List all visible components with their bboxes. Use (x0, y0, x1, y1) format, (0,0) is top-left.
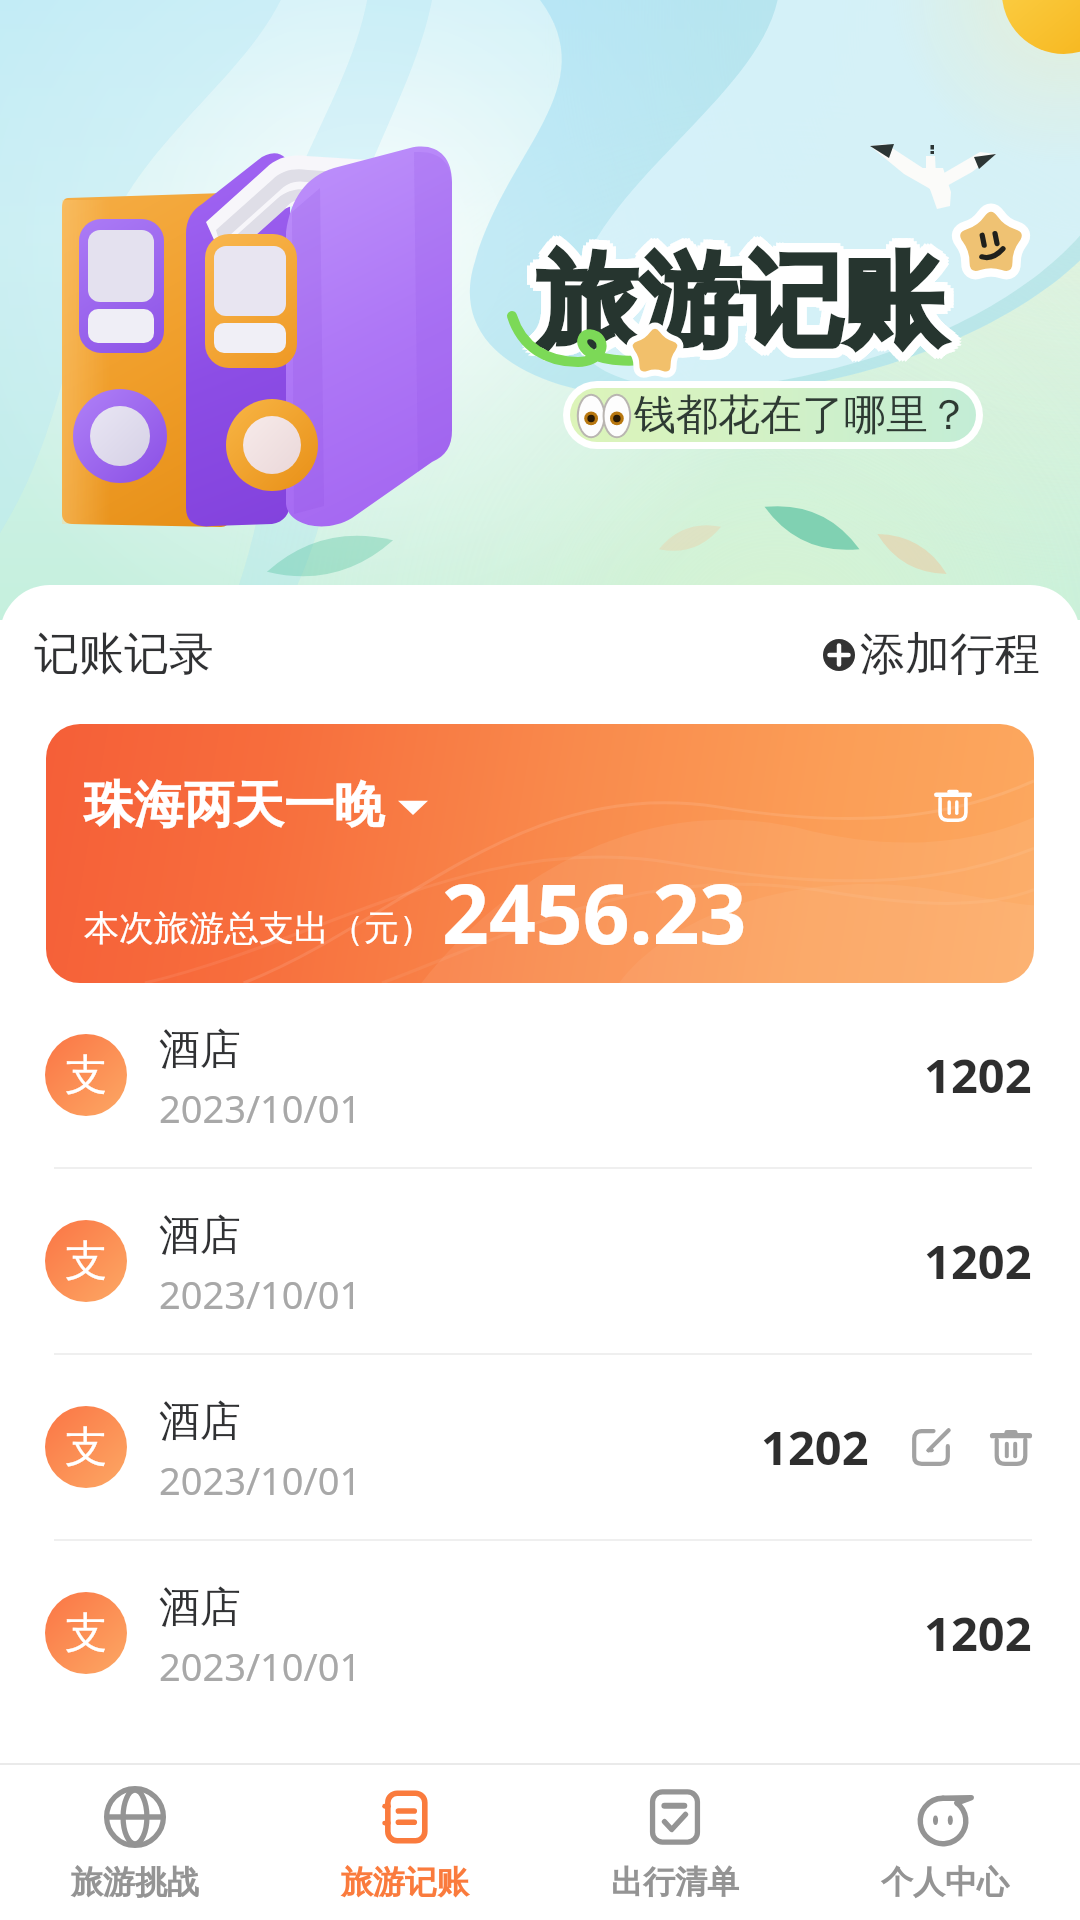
staticText: 旅游记账 (531, 244, 939, 372)
staticText: 旅游记账 (531, 232, 939, 360)
staticText: 旅游记账 (534, 244, 942, 372)
staticText: 钱都花在了哪里？ (634, 389, 970, 442)
staticText: 旅游记账 (543, 244, 951, 372)
button[interactable]: 出行清单 (540, 1765, 810, 1920)
staticText: 旅游记账 (537, 238, 945, 366)
button[interactable]: 编辑 (910, 1426, 952, 1468)
staticText: 旅游记账 (534, 247, 942, 375)
staticText: 本次旅游总支出（元） (84, 906, 434, 950)
staticText: 旅游记账 (531, 235, 939, 363)
staticText: 酒店 (159, 1024, 241, 1076)
staticText: 2023/10/01 (159, 1454, 362, 1506)
staticText: 旅游记账 (537, 232, 945, 360)
button[interactable]: 钱都花在了哪里？ (570, 388, 976, 442)
staticText: 旅游记账 (540, 229, 948, 357)
staticText: 记账记录 (34, 626, 214, 683)
staticText: 旅游记账 (528, 241, 936, 369)
button[interactable]: 添加行程 (819, 622, 1044, 687)
staticText: 出行清单 (611, 1862, 739, 1902)
staticText: 酒店 (159, 1210, 241, 1262)
staticText: 旅游记账 (540, 247, 948, 375)
staticText: 1202 (924, 1043, 1032, 1107)
staticText: 旅游记账 (537, 238, 945, 366)
staticText: 支 (65, 1607, 107, 1660)
staticText: 旅游记账 (534, 238, 942, 366)
staticText: 旅游记账 (534, 235, 942, 363)
staticText: 2023/10/01 (159, 1640, 362, 1692)
staticText: 旅游记账 (543, 241, 951, 369)
staticText: 旅游记账 (341, 1862, 469, 1902)
staticText: 旅游记账 (546, 238, 954, 366)
button[interactable]: 旅游挑战 (0, 1765, 270, 1920)
button[interactable]: 支 (0, 1355, 1080, 1539)
staticText: 添加行程 (860, 626, 1040, 683)
staticText: 旅游记账 (534, 232, 942, 360)
staticText: 旅游记账 (534, 229, 942, 357)
staticText: 旅游记账 (531, 238, 939, 366)
staticText: 旅游记账 (543, 238, 951, 366)
staticText: 1202 (924, 1601, 1032, 1665)
staticText: 旅游记账 (546, 235, 954, 363)
staticText: 个人中心 (881, 1862, 1009, 1902)
staticText: 支 (65, 1235, 107, 1288)
button[interactable]: 删除行程 (934, 786, 972, 824)
staticText: 酒店 (159, 1582, 241, 1634)
staticText: 旅游记账 (537, 241, 945, 369)
staticText: 支 (65, 1049, 107, 1102)
staticText: 旅游记账 (540, 232, 948, 360)
button[interactable]: 支 (0, 1541, 1080, 1725)
staticText: 旅游记账 (543, 232, 951, 360)
staticText: 旅游记账 (537, 247, 945, 375)
staticText: 1202 (761, 1415, 869, 1479)
staticText: 2023/10/01 (159, 1268, 362, 1320)
staticText: 旅游记账 (540, 235, 948, 363)
button[interactable]: 支 (0, 1169, 1080, 1353)
staticText: 旅游记账 (531, 241, 939, 369)
button[interactable]: 珠海两天一晚 (46, 724, 1034, 983)
button[interactable]: 删除 (990, 1426, 1032, 1468)
staticText: 1202 (924, 1229, 1032, 1293)
staticText: 旅游记账 (540, 244, 948, 372)
staticText: 珠海两天一晚 (84, 774, 384, 837)
button[interactable]: 支 (0, 983, 1080, 1167)
staticText: 旅游记账 (528, 238, 936, 366)
staticText: 旅游记账 (537, 229, 945, 357)
staticText: 酒店 (159, 1396, 241, 1448)
staticText: 支 (65, 1421, 107, 1474)
staticText: 旅游记账 (546, 241, 954, 369)
staticText: 旅游记账 (540, 238, 948, 366)
staticText: 2456.23 (442, 856, 747, 968)
button[interactable]: 旅游记账 (270, 1765, 540, 1920)
staticText: 旅游记账 (540, 241, 948, 369)
staticText: 旅游记账 (543, 235, 951, 363)
staticText: 旅游记账 (534, 241, 942, 369)
button[interactable]: 个人中心 (810, 1765, 1080, 1920)
staticText: 旅游记账 (537, 244, 945, 372)
staticText: 2023/10/01 (159, 1082, 362, 1134)
staticText: 旅游记账 (528, 235, 936, 363)
staticText: 旅游挑战 (71, 1862, 199, 1902)
staticText: 旅游记账 (537, 235, 945, 363)
